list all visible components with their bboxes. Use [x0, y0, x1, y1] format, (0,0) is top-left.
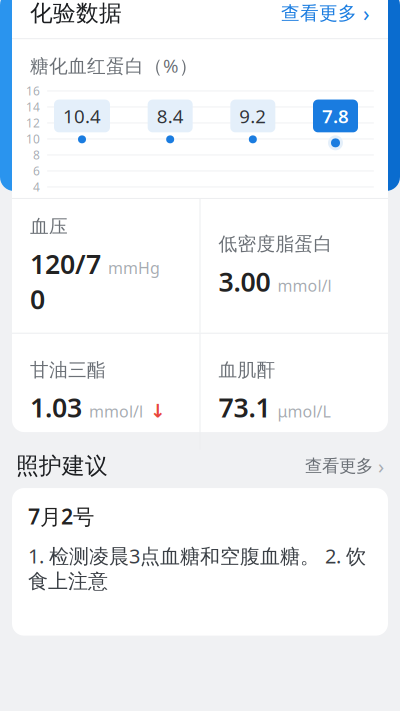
- staticText: 120/70: [30, 246, 101, 317]
- staticText: mmol/l: [277, 275, 331, 296]
- staticText: 血肌酐: [218, 359, 275, 381]
- staticText: 10: [26, 131, 40, 147]
- staticText: 10.4: [63, 104, 101, 128]
- staticText: 照护建议: [16, 452, 108, 480]
- staticText: mmHg: [108, 257, 160, 278]
- staticText: mmol/l: [89, 401, 143, 422]
- staticText: 1.03: [30, 389, 82, 425]
- staticText: 9.2: [239, 104, 266, 128]
- button[interactable]: 照护建议: [0, 444, 400, 488]
- staticText: 查看更多: [305, 455, 373, 477]
- staticText: 8.4: [157, 104, 184, 128]
- staticText: 7.8: [322, 104, 349, 128]
- staticText: 8: [33, 147, 40, 163]
- staticText: 16: [26, 83, 40, 99]
- button[interactable]: 化验数据: [12, 0, 388, 38]
- staticText: ›: [373, 453, 384, 479]
- staticText: 甘油三酯: [30, 359, 106, 381]
- staticText: 查看更多: [281, 2, 357, 25]
- staticText: 化验数据: [30, 0, 122, 27]
- staticText: ↓: [150, 400, 166, 422]
- staticText: 我的主诊–陈莉明: [163, 61, 305, 85]
- staticText: 12: [26, 115, 40, 131]
- staticText: μmol/L: [277, 401, 330, 422]
- staticText: 73.1: [218, 389, 270, 425]
- staticText: 6: [33, 163, 40, 179]
- staticText: ›: [357, 0, 370, 27]
- staticText: 低密度脂蛋白: [218, 233, 332, 256]
- staticText: 14: [26, 99, 40, 115]
- staticText: 7月2号: [28, 502, 94, 530]
- staticText: 4: [33, 179, 40, 195]
- staticText: 糖化血红蛋白（%）: [30, 53, 198, 78]
- staticText: 血压: [30, 215, 68, 238]
- staticText: 1. 检测凌晨3点血糖和空腹血糖。 2. 饮食上注意: [28, 542, 366, 593]
- staticText: 李晓晓: [80, 59, 149, 87]
- staticText: 3.00: [218, 264, 270, 299]
- staticText: 100%: [311, 0, 356, 14]
